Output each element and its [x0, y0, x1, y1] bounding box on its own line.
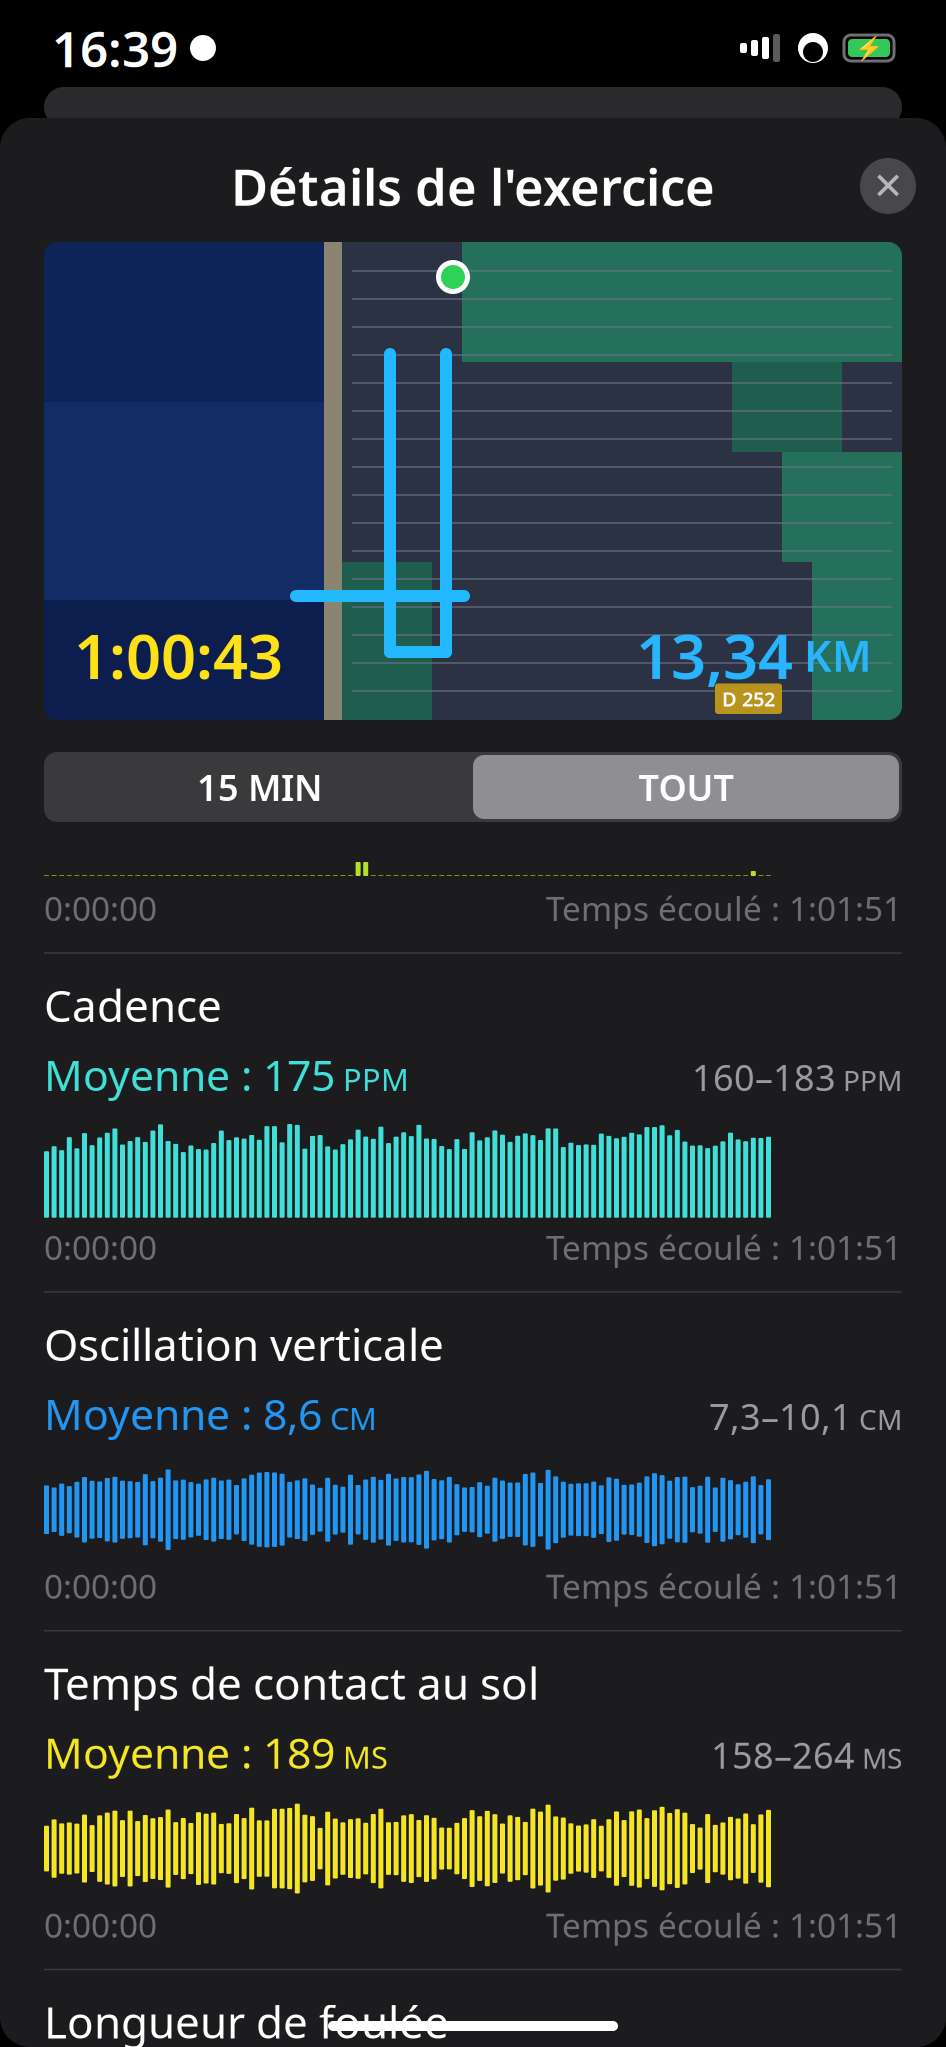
staticText: 175 — [263, 1046, 335, 1103]
staticText: Temps de contact au sol — [44, 1653, 539, 1712]
staticText: Détails de l'exercice — [231, 152, 715, 220]
staticText: MS — [855, 1739, 902, 1776]
staticText: Moyenne : — [44, 1724, 263, 1781]
staticText: Temps écoulé : 1:01:51 — [546, 886, 902, 930]
staticText: D 252 — [722, 685, 775, 712]
staticText: Cadence — [44, 976, 222, 1034]
button[interactable]: Fermer — [860, 158, 916, 214]
staticText: 0:00:00 — [44, 1903, 157, 1947]
staticText: 13,34 — [636, 615, 793, 696]
staticText: PPM — [836, 1062, 902, 1099]
staticText: Moyenne : — [44, 1046, 263, 1103]
staticText: Temps écoulé : 1:01:51 — [546, 1564, 902, 1608]
button[interactable]: 15 MIN — [47, 755, 473, 819]
staticText: 160–183 — [692, 1053, 836, 1101]
staticText: Temps écoulé : 1:01:51 — [546, 1225, 902, 1269]
staticText: 7,3–10,1 — [709, 1392, 852, 1440]
staticText: KM — [793, 627, 872, 684]
staticText: MS — [335, 1736, 388, 1777]
staticText: 189 — [263, 1724, 335, 1781]
staticText: ⚡ — [855, 35, 883, 61]
staticText: 16:39 — [52, 15, 178, 81]
staticText: 158–264 — [711, 1731, 855, 1779]
staticText: 0:00:00 — [44, 1564, 157, 1608]
staticText: 0:00:00 — [44, 1225, 157, 1269]
staticText: TOUT — [638, 763, 733, 811]
staticText: Longueur de foulée — [44, 1992, 449, 2047]
staticText: 1:00:43 — [74, 615, 283, 696]
staticText: PPM — [335, 1059, 409, 1099]
staticText: Temps écoulé : 1:01:51 — [546, 1903, 902, 1947]
staticText: Moyenne : — [44, 1385, 263, 1442]
staticText: Oscillation verticale — [44, 1315, 444, 1373]
staticText: 8,6 — [263, 1385, 322, 1442]
button[interactable]: TOUT — [473, 755, 899, 819]
staticText: 0:00:00 — [44, 886, 157, 930]
staticText: ✕ — [872, 165, 903, 207]
staticText: 15 MIN — [197, 763, 323, 811]
staticText: CM — [322, 1398, 377, 1438]
staticText: CM — [852, 1400, 902, 1438]
